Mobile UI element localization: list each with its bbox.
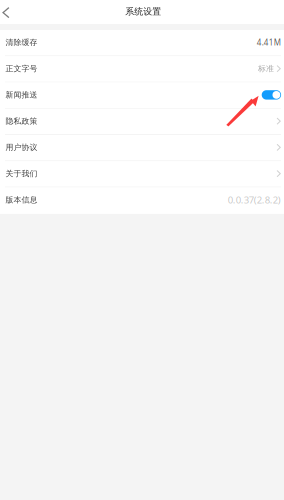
staticText: 0.0.37(2.8.2) (228, 193, 281, 206)
button[interactable]: 版本信息 (0, 187, 284, 214)
staticText: 4.41M (257, 37, 281, 48)
button[interactable]: Back (0, 0, 17, 24)
staticText: 标准 (258, 64, 274, 74)
staticText: 隐私政策 (5, 116, 37, 126)
button[interactable]: 清除缓存 (0, 30, 284, 56)
staticText: 正文字号 (5, 64, 37, 74)
button[interactable]: 关于我们 (0, 161, 284, 187)
staticText: 用户协议 (5, 142, 37, 152)
staticText: 版本信息 (5, 195, 37, 205)
button[interactable]: 正文字号 (0, 56, 284, 82)
button[interactable]: 用户协议 (0, 135, 284, 161)
staticText: 新闻推送 (5, 90, 37, 100)
button[interactable]: 隐私政策 (0, 109, 284, 135)
staticText: 清除缓存 (5, 37, 37, 47)
button[interactable]: 新闻推送 (0, 82, 284, 109)
staticText: 关于我们 (5, 169, 37, 179)
staticText: 系统设置 (125, 6, 161, 17)
